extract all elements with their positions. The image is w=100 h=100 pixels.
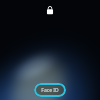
- staticText: Face ID: [41, 87, 59, 94]
- other: Locked: [46, 5, 54, 15]
- button[interactable]: Face ID: [34, 83, 66, 97]
